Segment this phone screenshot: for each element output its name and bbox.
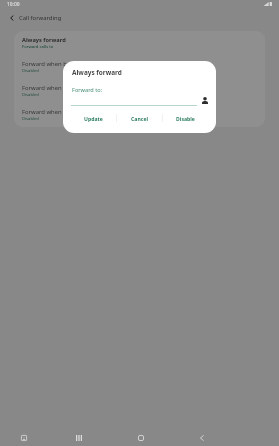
staticText: Call forwarding [19, 14, 62, 22]
staticText: Always forward [72, 68, 122, 77]
staticText: Forward when busy [22, 60, 77, 68]
button[interactable]: Hide keyboard [14, 429, 34, 446]
button[interactable]: Always forward [14, 31, 265, 55]
button[interactable]: Forward when unanswered [14, 79, 265, 103]
staticText: Disable [176, 115, 195, 122]
staticText: Forward when unanswered [22, 84, 98, 92]
staticText: Always forward [22, 36, 66, 44]
staticText: Forward calls to [22, 44, 54, 50]
button[interactable]: Navigate up [2, 8, 21, 27]
staticText: Cancel [131, 115, 148, 122]
button[interactable]: Back [171, 429, 232, 446]
staticText: Disabled [22, 68, 39, 74]
staticText: Forward when unreachable [22, 108, 98, 116]
staticText: 10:00 [7, 1, 20, 8]
button[interactable]: Home [110, 429, 171, 446]
button[interactable]: Cancel [117, 111, 162, 125]
button[interactable]: Update [71, 111, 116, 125]
staticText: Disabled [22, 116, 39, 122]
staticText: Update [84, 115, 103, 122]
button[interactable]: Disable [163, 111, 208, 125]
button[interactable]: Forward when unreachable [14, 103, 265, 127]
button[interactable]: Recents [48, 429, 110, 446]
button[interactable]: Choose contact [200, 95, 210, 105]
staticText: Disabled [22, 92, 39, 98]
button[interactable]: Forward when busy [14, 55, 265, 79]
staticText: Forward to: [72, 86, 103, 94]
